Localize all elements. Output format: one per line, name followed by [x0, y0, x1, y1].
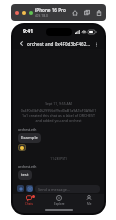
staticText: iPhone 16 Pro [35, 7, 66, 13]
button[interactable]: Example [18, 133, 41, 143]
staticText: orchest and 0x4F0d3bF4629956df9... [27, 41, 92, 47]
staticText: orchest.eth [18, 127, 37, 132]
staticText: Explore [54, 202, 65, 206]
button[interactable]: test [18, 170, 32, 180]
button[interactable]: Send a message... [35, 185, 100, 193]
staticText: test [21, 172, 29, 178]
button[interactable]: Camera [26, 185, 33, 192]
staticText: Sept 11, 9:55 AM [18, 101, 99, 106]
button[interactable]: Minimize [22, 11, 26, 15]
button[interactable]: More options [92, 40, 100, 48]
button[interactable] [18, 144, 26, 151]
staticText: iOS 18.0 [35, 13, 48, 18]
staticText: 0x4F0d3bF4629956df9cd0aB1a9A1bF0A9bE11a1… [20, 108, 97, 123]
staticText: 11:28 (PST) [18, 157, 99, 161]
staticText: Send a message... [38, 187, 70, 192]
button[interactable]: Explore [44, 194, 74, 207]
staticText: Chats [25, 202, 33, 206]
button[interactable]: Home [71, 9, 79, 17]
button[interactable]: Zoom [29, 11, 33, 15]
staticText: 9:41 [23, 28, 33, 35]
staticText: Me [87, 202, 92, 206]
button[interactable]: App Switcher [83, 9, 91, 17]
button[interactable]: Attach [17, 185, 24, 192]
button[interactable]: Chats [13, 194, 44, 207]
button[interactable]: Back [17, 39, 26, 48]
staticText: orchest.eth [18, 164, 37, 169]
staticText: Example [21, 135, 38, 141]
button[interactable]: Me [74, 194, 104, 207]
button[interactable]: Share [95, 9, 103, 17]
button[interactable]: Close [15, 11, 19, 15]
